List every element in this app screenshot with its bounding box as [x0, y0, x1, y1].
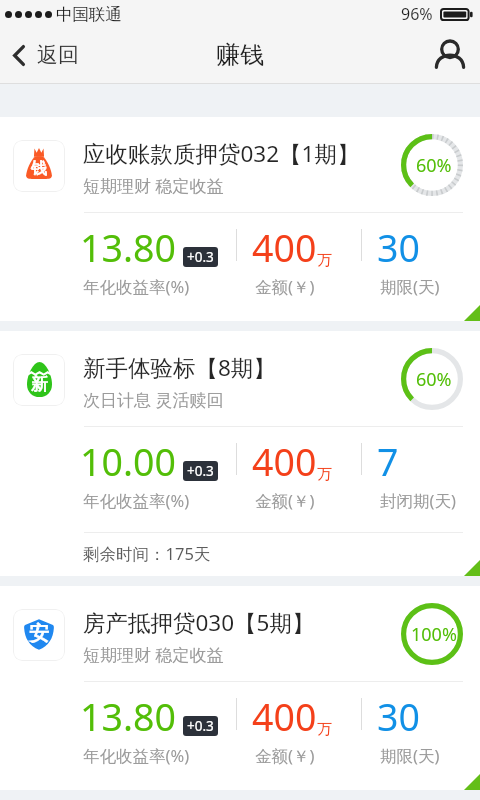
staticText: 应收账款质押贷032【1期】: [83, 138, 360, 169]
staticText: 万: [317, 720, 332, 739]
staticText: 100%: [411, 622, 457, 647]
button[interactable]: 返回: [0, 43, 144, 69]
staticText: 封闭期(天): [380, 489, 456, 512]
staticText: 30: [377, 222, 420, 273]
staticText: +0.3: [187, 717, 214, 735]
staticText: 期限(天): [380, 744, 440, 767]
staticText: 60%: [416, 367, 452, 392]
staticText: 金额(￥): [255, 275, 315, 298]
staticText: 短期理财 稳定收益: [83, 643, 224, 666]
staticText: 钱: [31, 159, 47, 179]
button[interactable]: 钱: [0, 117, 480, 321]
staticText: +0.3: [187, 248, 214, 266]
staticText: 30: [377, 691, 420, 742]
staticText: 房产抵押贷030【5期】: [83, 607, 315, 638]
staticText: 60%: [416, 153, 452, 178]
staticText: 短期理财 稳定收益: [83, 174, 224, 197]
staticText: 年化收益率(%): [83, 744, 190, 767]
staticText: 400: [252, 222, 317, 273]
staticText: 新手体验标【8期】: [83, 352, 276, 383]
staticText: 7: [377, 436, 399, 487]
staticText: 新: [31, 374, 48, 395]
staticText: +0.3: [187, 462, 214, 480]
button[interactable]: Profile: [422, 31, 480, 81]
staticText: 96%: [401, 3, 433, 25]
staticText: 赚钱: [216, 40, 264, 70]
staticText: 年化收益率(%): [83, 489, 190, 512]
staticText: 次日计息 灵活赎回: [83, 388, 224, 411]
staticText: 13.80: [80, 691, 176, 742]
staticText: 400: [252, 436, 317, 487]
staticText: 期限(天): [380, 275, 440, 298]
staticText: 万: [317, 465, 332, 484]
staticText: 万: [317, 251, 332, 270]
button[interactable]: 安: [0, 586, 480, 790]
staticText: 返回: [37, 42, 79, 68]
staticText: 13.80: [80, 222, 176, 273]
staticText: 10.00: [80, 436, 176, 487]
staticText: 400: [252, 691, 317, 742]
staticText: 金额(￥): [255, 744, 315, 767]
staticText: 金额(￥): [255, 489, 315, 512]
staticText: 安: [29, 621, 49, 646]
staticText: 剩余时间：175天: [83, 542, 211, 565]
button[interactable]: 新: [0, 331, 480, 576]
staticText: 年化收益率(%): [83, 275, 190, 298]
staticText: 中国联通: [56, 4, 122, 25]
